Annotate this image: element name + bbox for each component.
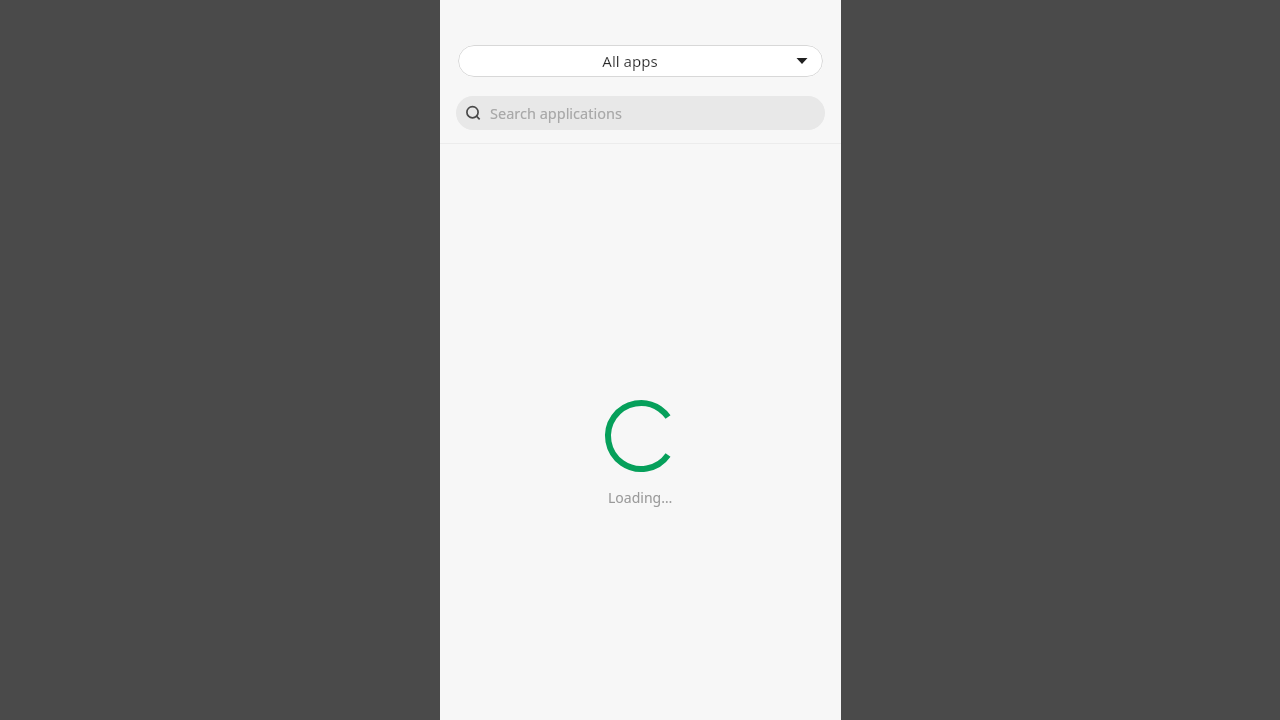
staticText: All apps	[602, 51, 658, 71]
staticText: Search applications	[490, 103, 622, 123]
button[interactable]: All apps	[458, 45, 823, 77]
staticText: Loading…	[608, 488, 673, 507]
button[interactable]: Search applications	[456, 96, 825, 130]
